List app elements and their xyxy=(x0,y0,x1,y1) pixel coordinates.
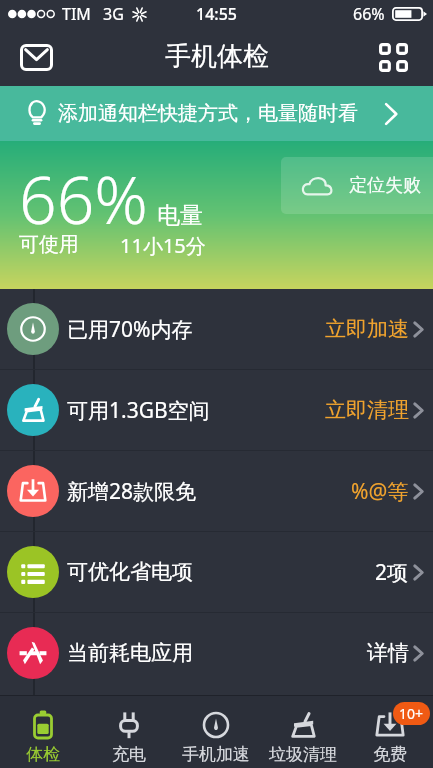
staticText: 立即清理 xyxy=(325,397,409,423)
staticText: 手机体检 xyxy=(165,40,269,73)
button[interactable]: Apps xyxy=(369,33,417,81)
button[interactable]: 可优化省电项 xyxy=(0,532,433,612)
staticText: 立即加速 xyxy=(325,316,409,342)
staticText: 体检 xyxy=(26,744,60,765)
staticText: 定位失败 xyxy=(349,174,421,197)
staticText: 2项 xyxy=(375,558,409,587)
button[interactable]: 当前耗电应用 xyxy=(0,613,433,693)
button[interactable]: 新增28款限免 xyxy=(0,451,433,531)
staticText: 已用70%内存 xyxy=(67,315,193,344)
staticText: 66% xyxy=(19,153,148,243)
staticText: %@等 xyxy=(351,477,409,506)
button[interactable]: 手机加速 xyxy=(172,696,259,768)
button[interactable]: 垃圾清理 xyxy=(259,696,346,768)
staticText: 10+ xyxy=(399,704,424,723)
staticText: 可使用 xyxy=(19,232,79,257)
staticText: 添加通知栏快捷方式，电量随时看 xyxy=(58,101,358,126)
staticText: 垃圾清理 xyxy=(269,744,337,765)
button[interactable]: 可用1.3GB空间 xyxy=(0,370,433,450)
staticText: 手机加速 xyxy=(182,744,250,765)
button[interactable]: 添加通知栏快捷方式，电量随时看 xyxy=(0,86,433,141)
button[interactable]: 体检 xyxy=(0,696,86,768)
staticText: 免费 xyxy=(373,744,407,765)
staticText: 可优化省电项 xyxy=(67,559,193,585)
button[interactable]: 已用70%内存 xyxy=(0,289,433,369)
staticText: 3G xyxy=(103,3,124,25)
staticText: TIM xyxy=(62,3,91,25)
staticText: 充电 xyxy=(112,744,146,765)
staticText: 当前耗电应用 xyxy=(67,640,193,666)
staticText: 电量 xyxy=(157,201,203,230)
staticText: 新增28款限免 xyxy=(67,477,197,506)
staticText: 详情 xyxy=(367,640,409,666)
staticText: 66% xyxy=(353,3,385,25)
staticText: 14:55 xyxy=(196,3,237,25)
button[interactable]: 10+ xyxy=(346,696,433,768)
button[interactable]: 充电 xyxy=(86,696,172,768)
button[interactable]: Messages xyxy=(12,33,60,81)
staticText: 11小15分 xyxy=(120,232,206,259)
staticText: 可用1.3GB空间 xyxy=(67,396,210,425)
button[interactable]: 定位失败 xyxy=(281,157,433,214)
